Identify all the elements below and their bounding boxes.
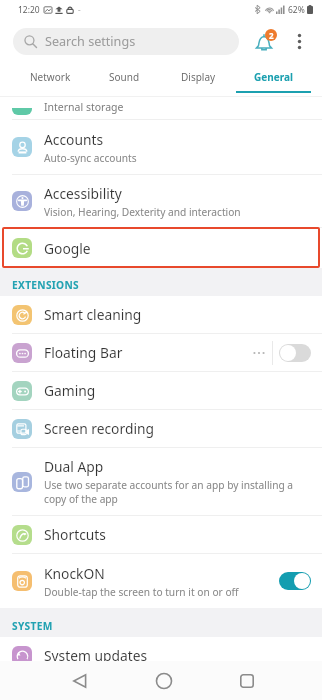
- staticText: Double-tap the screen to turn it on or o…: [44, 585, 239, 599]
- button[interactable]: Sound: [87, 64, 161, 97]
- button[interactable]: Back: [38, 661, 122, 700]
- staticText: 62%: [288, 4, 305, 16]
- staticText: Display: [181, 70, 216, 84]
- button[interactable]: Gaming: [0, 372, 322, 409]
- button[interactable]: Google: [0, 228, 322, 268]
- button[interactable]: Search settings: [13, 28, 239, 55]
- staticText: Search settings: [45, 33, 136, 50]
- staticText: Screen recording: [44, 419, 154, 438]
- button[interactable]: Internal storage: [0, 97, 322, 119]
- staticText: System updates: [44, 646, 148, 665]
- button[interactable]: Dual App: [0, 448, 322, 515]
- staticText: Internal storage: [44, 100, 124, 114]
- staticText: Floating Bar: [44, 343, 123, 362]
- staticText: Accounts: [44, 130, 104, 149]
- staticText: General: [254, 70, 293, 84]
- button[interactable]: Home: [122, 661, 205, 700]
- staticText: 2: [269, 30, 274, 41]
- button[interactable]: Floating Bar: [0, 334, 322, 371]
- button[interactable]: Display: [161, 64, 236, 97]
- staticText: Gaming: [44, 381, 96, 400]
- button[interactable]: General: [236, 64, 311, 97]
- button[interactable]: Notifications: [250, 26, 280, 56]
- staticText: -: [78, 4, 81, 15]
- button[interactable]: Shortcuts: [0, 516, 322, 553]
- button[interactable]: Smart cleaning: [0, 296, 322, 333]
- button[interactable]: System updates: [0, 637, 322, 674]
- staticText: Google: [44, 239, 91, 258]
- staticText: Shortcuts: [44, 525, 106, 544]
- staticText: Accessibility: [44, 184, 122, 203]
- button[interactable]: Network: [13, 64, 87, 97]
- button[interactable]: KnockON: [0, 554, 322, 608]
- button[interactable]: Accessibility: [0, 175, 322, 227]
- staticText: EXTENSIONS: [12, 278, 79, 292]
- staticText: SYSTEM: [12, 619, 53, 633]
- staticText: Sound: [109, 70, 140, 84]
- staticText: Auto-sync accounts: [44, 151, 137, 165]
- button[interactable]: Turn on: [279, 344, 311, 362]
- staticText: 12:20: [18, 4, 40, 16]
- button[interactable]: More options: [286, 28, 312, 54]
- staticText: Dual App: [44, 457, 104, 476]
- button[interactable]: Turn off: [279, 572, 311, 590]
- staticText: Smart cleaning: [44, 305, 142, 324]
- button[interactable]: Accounts: [0, 120, 322, 174]
- staticText: Vision, Hearing, Dexterity and interacti…: [44, 205, 241, 219]
- staticText: KnockON: [44, 564, 105, 583]
- staticText: Network: [30, 70, 71, 84]
- button[interactable]: Recent apps: [205, 661, 288, 700]
- staticText: Use two separate accounts for an app by …: [44, 478, 311, 506]
- button[interactable]: Screen recording: [0, 410, 322, 447]
